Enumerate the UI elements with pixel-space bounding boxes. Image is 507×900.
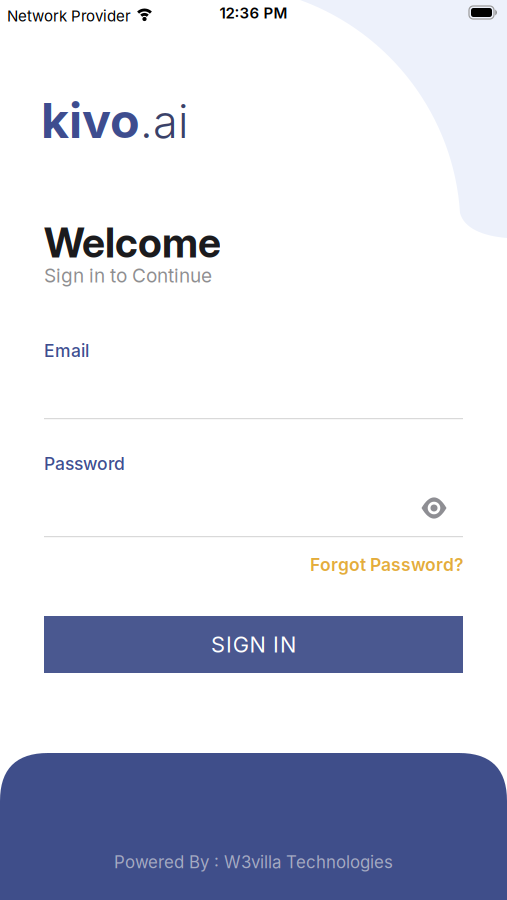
staticText: 12:36 PM <box>219 4 287 22</box>
button[interactable]: SIGN IN <box>44 616 463 673</box>
staticText: .ai <box>140 94 189 149</box>
staticText: Powered By : W3villa Technologies <box>114 852 393 872</box>
staticText: Network Provider <box>7 7 131 25</box>
staticText: Welcome <box>44 218 221 267</box>
staticText: Password <box>44 453 125 474</box>
staticText: Sign in to Continue <box>44 264 212 287</box>
button[interactable]: Show password <box>421 497 447 519</box>
staticText: Forgot Password? <box>310 554 463 575</box>
staticText: SIGN IN <box>211 631 296 658</box>
button[interactable]: Forgot Password? <box>310 554 463 575</box>
staticText: Email <box>44 340 89 361</box>
staticText: kivo <box>41 91 140 150</box>
